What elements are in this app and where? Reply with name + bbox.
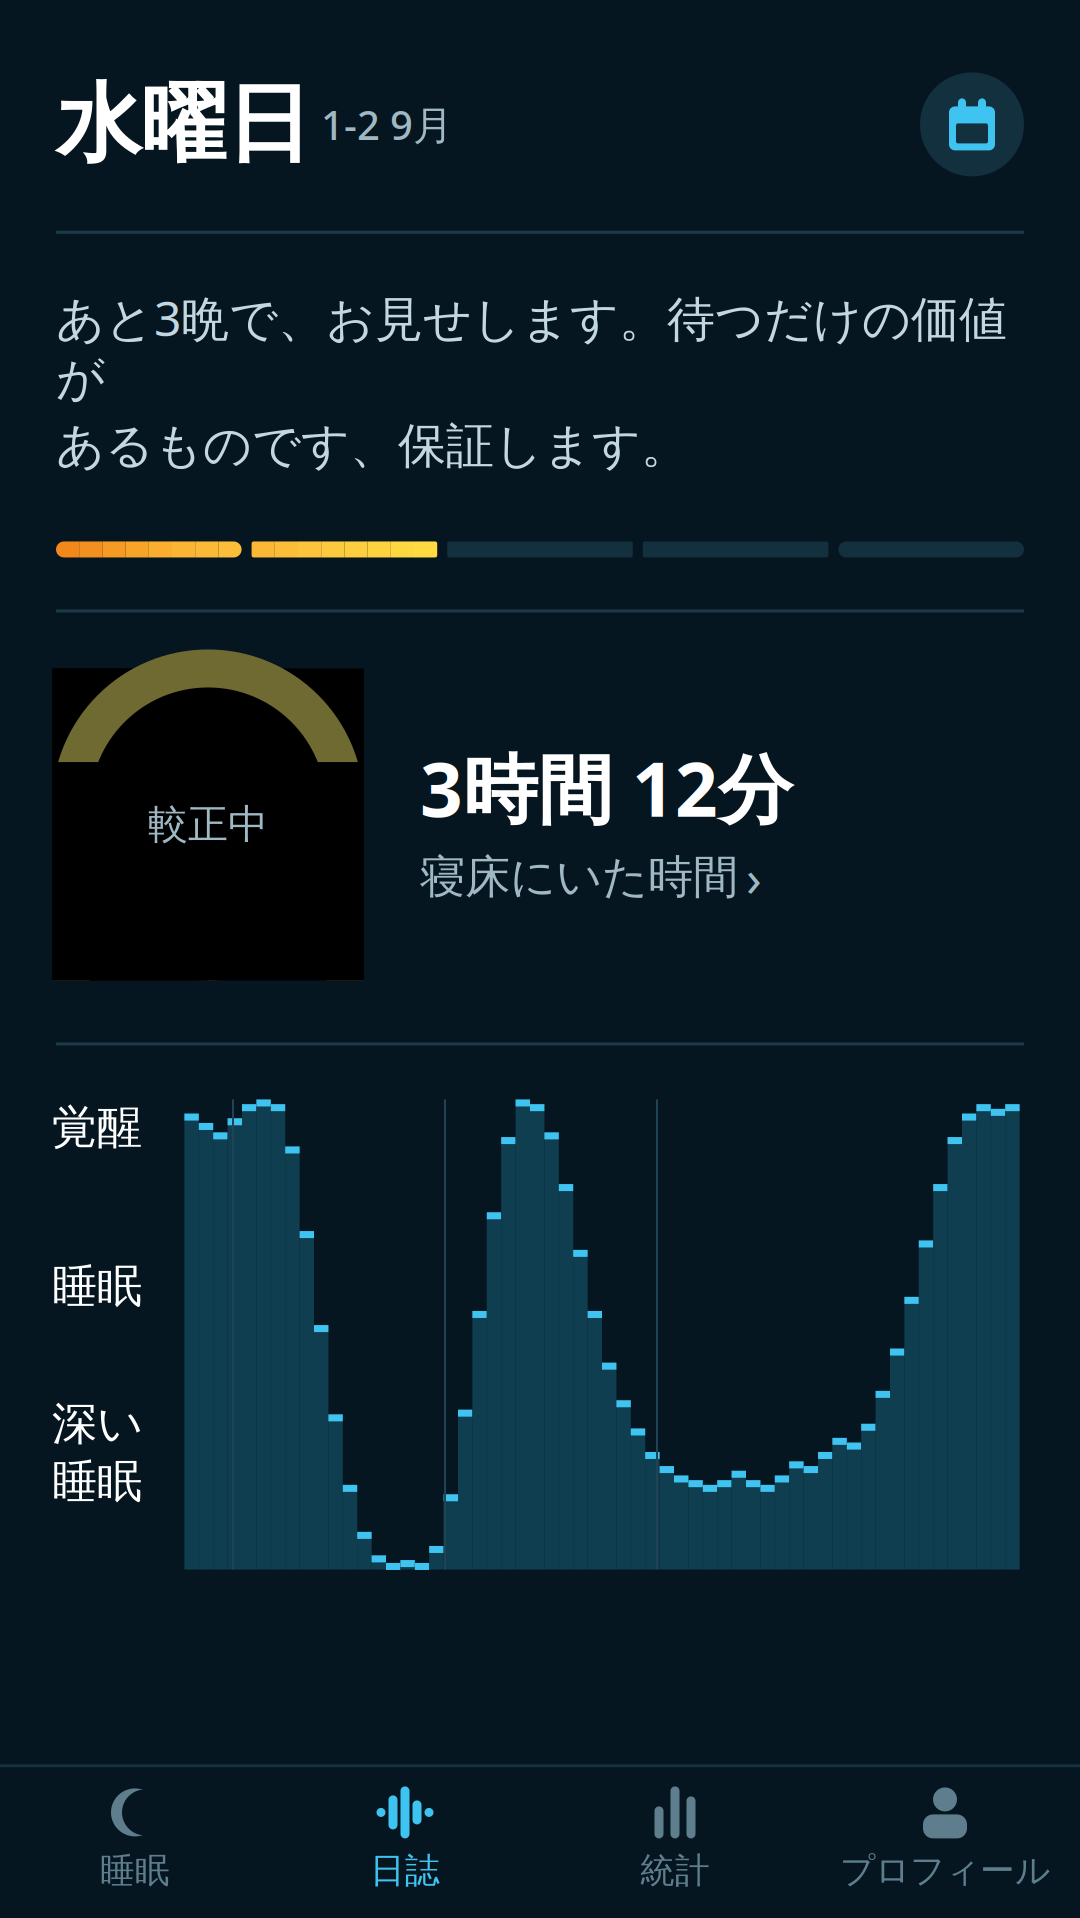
staticText: あと3晩で、お見せします。待つだけの価値が: [56, 286, 1007, 408]
button[interactable]: 寝床にいた時間: [420, 843, 762, 911]
staticText: ›: [746, 843, 762, 911]
staticText: あるものです、保証します。: [56, 416, 689, 475]
staticText: 睡眠: [52, 1259, 142, 1314]
staticText: 寝床にいた時間: [420, 849, 738, 905]
staticText: 3時間 12分: [420, 738, 793, 837]
staticText: プロフィール: [840, 1849, 1050, 1892]
button[interactable]: 日誌: [270, 1767, 540, 1918]
staticText: 睡眠: [52, 1454, 142, 1509]
staticText: 水曜日: [56, 72, 311, 177]
button[interactable]: 統計: [540, 1767, 810, 1918]
staticText: 深い: [52, 1396, 143, 1452]
staticText: 睡眠: [100, 1849, 170, 1892]
staticText: 覚醒: [52, 1099, 142, 1155]
button[interactable]: 睡眠: [0, 1767, 270, 1918]
staticText: 日誌: [370, 1849, 440, 1892]
staticText: 1-2 9月: [311, 98, 453, 151]
staticText: 統計: [640, 1849, 710, 1892]
button[interactable]: カレンダー: [920, 72, 1024, 176]
staticText: 較正中: [148, 800, 268, 849]
button[interactable]: プロフィール: [810, 1767, 1080, 1918]
